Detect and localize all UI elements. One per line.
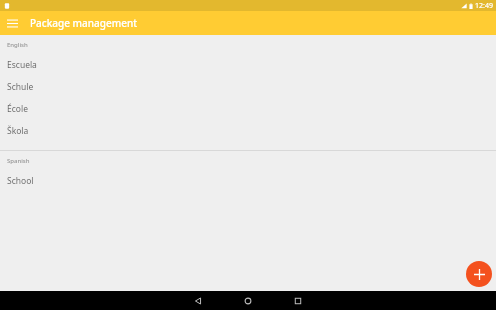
- button[interactable]: Home: [223, 291, 273, 310]
- button[interactable]: École: [0, 98, 496, 120]
- button[interactable]: Škola: [0, 120, 496, 142]
- staticText: École: [7, 103, 28, 115]
- button[interactable]: Open navigation drawer: [0, 11, 24, 35]
- button[interactable]: Add package: [466, 261, 492, 287]
- button[interactable]: Recent apps: [273, 291, 323, 310]
- button[interactable]: School: [0, 170, 496, 192]
- staticText: Package management: [30, 16, 138, 30]
- staticText: 12:49: [475, 1, 493, 11]
- staticText: School: [7, 175, 34, 187]
- staticText: Escuela: [7, 59, 37, 71]
- button[interactable]: Escuela: [0, 54, 496, 76]
- staticText: Škola: [7, 125, 29, 137]
- button[interactable]: Schule: [0, 76, 496, 98]
- staticText: Schule: [7, 81, 34, 93]
- staticText: Spanish: [7, 157, 30, 165]
- staticText: English: [7, 41, 28, 49]
- button[interactable]: Back: [173, 291, 223, 310]
